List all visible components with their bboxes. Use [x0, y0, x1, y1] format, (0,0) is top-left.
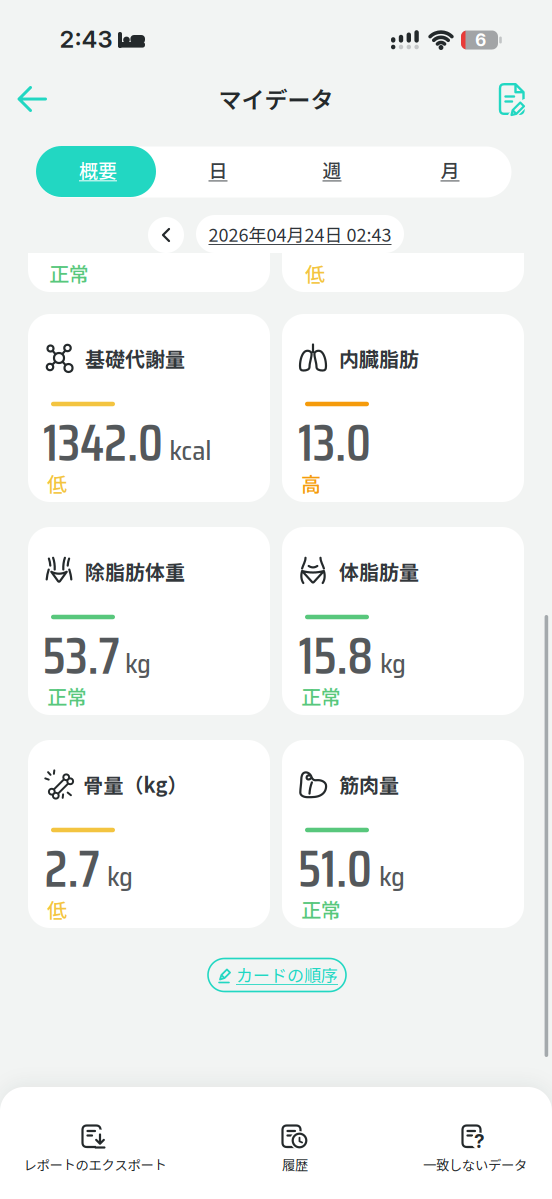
button[interactable]: 骨量（kg） — [28, 740, 270, 928]
staticText: kg — [125, 642, 151, 685]
button[interactable]: 内臓脂肪 — [282, 314, 524, 502]
button[interactable]: ? — [389, 1115, 552, 1189]
button[interactable]: レポートのエクスポート — [9, 1115, 181, 1189]
button[interactable]: 週 — [282, 144, 382, 195]
staticText: マイデータ — [218, 82, 333, 115]
staticText: 体脂肪量 — [339, 556, 419, 585]
staticText: 2.7 — [44, 828, 99, 909]
button[interactable]: カードの順序 — [208, 958, 346, 991]
button[interactable]: 基礎代謝量 — [28, 314, 270, 502]
staticText: 低 — [47, 468, 67, 497]
staticText: カードの順序 — [236, 962, 338, 987]
staticText: 日 — [208, 156, 227, 183]
staticText: kg — [379, 855, 405, 898]
button[interactable]: Back — [17, 86, 47, 112]
button[interactable]: Previous day — [148, 217, 184, 253]
staticText: レポートのエクスポート — [23, 1155, 166, 1174]
staticText: ? — [474, 1129, 485, 1152]
staticText: 51.0 — [298, 828, 372, 909]
staticText: 13.0 — [298, 402, 371, 483]
button[interactable]: 除脂肪体重 — [28, 527, 270, 715]
staticText: 除脂肪体重 — [85, 556, 185, 585]
staticText: 正常 — [47, 681, 87, 710]
staticText: 正常 — [301, 681, 341, 710]
staticText: kg — [380, 642, 406, 685]
staticText: 6 — [475, 29, 486, 51]
button[interactable]: 日 — [168, 144, 268, 195]
staticText: 2026年04月24日 02:43 — [208, 221, 391, 247]
staticText: 正常 — [301, 894, 341, 923]
staticText: kg — [107, 855, 133, 898]
staticText: 内臓脂肪 — [339, 343, 419, 372]
staticText: 筋肉量 — [339, 769, 399, 798]
button[interactable]: 概要 — [36, 146, 156, 197]
button[interactable]: 筋肉量 — [282, 740, 524, 928]
button[interactable]: 体脂肪量 — [282, 527, 524, 715]
staticText: 一致しないデータ — [423, 1155, 527, 1174]
staticText: 概要 — [79, 156, 117, 183]
staticText: 低 — [47, 894, 67, 923]
staticText: 53.7 — [42, 615, 119, 696]
staticText: 低 — [305, 258, 325, 287]
button[interactable]: 月 — [400, 144, 500, 195]
staticText: 2:43 — [59, 24, 112, 53]
staticText: 高 — [301, 468, 321, 497]
staticText: kcal — [169, 429, 211, 472]
button[interactable]: 2026年04月24日 02:43 — [196, 215, 404, 253]
button[interactable]: 履歴 — [209, 1115, 381, 1189]
staticText: 1342.0 — [43, 402, 163, 483]
staticText: 15.8 — [298, 615, 372, 696]
staticText: 履歴 — [282, 1155, 308, 1174]
staticText: 骨量（kg） — [83, 769, 187, 798]
button[interactable]: Edit report — [497, 82, 529, 116]
staticText: 月 — [440, 156, 459, 183]
staticText: 正常 — [49, 258, 89, 287]
staticText: 週 — [322, 156, 341, 183]
staticText: 基礎代謝量 — [85, 343, 185, 372]
